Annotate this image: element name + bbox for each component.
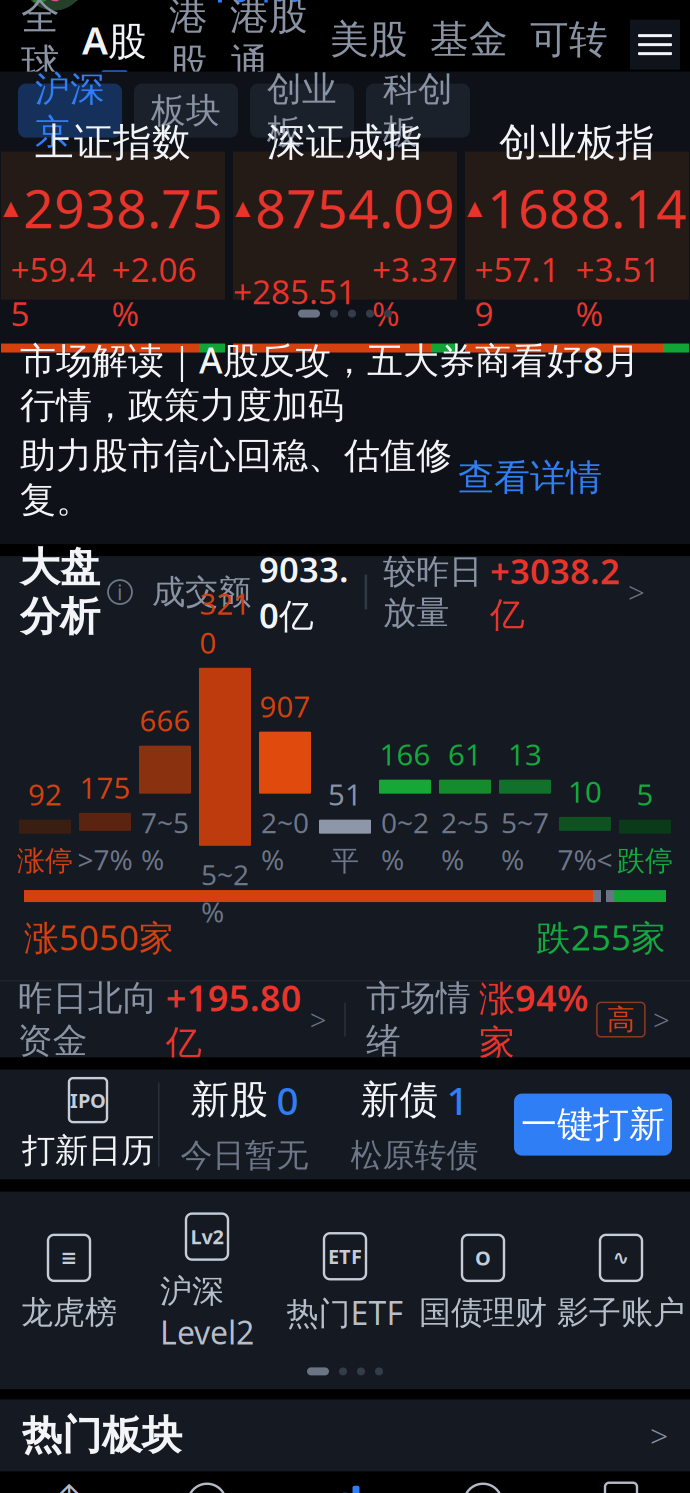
- staticText: O: [475, 1245, 491, 1271]
- staticText: 热门板块: [22, 1411, 182, 1460]
- button[interactable]: ↗: [138, 1479, 276, 1493]
- staticText: 涨5050家: [24, 914, 174, 960]
- button[interactable]: 交易: [414, 1479, 552, 1493]
- staticText: 新股: [190, 1076, 268, 1124]
- staticText: 热门ETF: [286, 1291, 403, 1334]
- button[interactable]: 行情: [276, 1479, 414, 1493]
- button[interactable]: 科创板: [366, 84, 470, 138]
- staticText: 行情: [209, 0, 307, 10]
- staticText: Lv2: [190, 1223, 223, 1250]
- staticText: 5~2%: [201, 856, 249, 930]
- button[interactable]: 沪深京: [18, 84, 122, 138]
- staticText: 5~7%: [501, 804, 549, 878]
- button[interactable]: Profile: [20, 0, 88, 14]
- staticText: +195.80亿: [166, 974, 302, 1066]
- staticText: 666: [139, 701, 190, 740]
- button[interactable]: 深证成指: [233, 152, 457, 300]
- staticText: 10: [568, 772, 602, 811]
- staticText: 创业板: [267, 68, 337, 153]
- staticText: 龙虎榜: [21, 1293, 117, 1332]
- staticText: 查看详情: [458, 456, 602, 500]
- button[interactable]: 美股: [319, 16, 419, 73]
- button[interactable]: ≡: [0, 1235, 138, 1332]
- button[interactable]: 热门板块: [0, 1399, 690, 1471]
- button[interactable]: 市场情绪: [346, 982, 690, 1058]
- staticText: ↑: [49, 1475, 89, 1493]
- staticText: 0: [276, 1074, 298, 1126]
- staticText: IPO: [70, 1087, 106, 1113]
- staticText: 基金: [430, 16, 508, 63]
- staticText: 助力股市信心回稳、估值修复。: [20, 434, 452, 522]
- button[interactable]: 全球: [10, 0, 71, 97]
- button[interactable]: O: [414, 1235, 552, 1332]
- staticText: 全球: [21, 0, 60, 87]
- button[interactable]: Lv2: [138, 1214, 276, 1353]
- button[interactable]: 新股: [159, 1074, 329, 1175]
- staticText: 2~0%: [261, 804, 309, 878]
- button[interactable]: IPO: [18, 1078, 158, 1171]
- staticText: ▲: [3, 196, 18, 219]
- staticText: │: [357, 575, 375, 609]
- button[interactable]: 上证指数: [1, 152, 225, 300]
- staticText: 松原转债: [350, 1136, 478, 1175]
- staticText: +3.37%: [372, 247, 457, 335]
- button[interactable]: 昨日北向资金: [0, 982, 344, 1058]
- staticText: 跌停: [617, 844, 673, 878]
- staticText: 国债理财: [419, 1293, 547, 1332]
- staticText: 8754.09: [255, 172, 455, 243]
- button[interactable]: 港股通: [219, 0, 319, 97]
- staticText: 92: [28, 775, 62, 814]
- staticText: 美股: [330, 16, 408, 63]
- staticText: >7%: [77, 841, 132, 878]
- button[interactable]: 新债: [329, 1074, 499, 1175]
- staticText: 跌255家: [536, 914, 666, 960]
- button[interactable]: 大盘分析: [0, 556, 690, 628]
- staticText: 创业板指: [499, 119, 655, 166]
- staticText: 3210: [199, 584, 250, 662]
- staticText: 涨94%家: [479, 974, 589, 1066]
- staticText: 2~5%: [441, 804, 489, 878]
- staticText: 沪深Level2: [160, 1272, 254, 1353]
- staticText: +57.19: [474, 247, 559, 335]
- button[interactable]: More markets: [630, 20, 680, 70]
- staticText: +3.51%: [575, 247, 660, 335]
- button[interactable]: A股: [71, 14, 158, 75]
- staticText: 成交额: [152, 572, 251, 612]
- staticText: +285.51: [233, 269, 356, 313]
- staticText: 175: [79, 768, 130, 807]
- button[interactable]: ¥: [552, 1479, 690, 1493]
- button[interactable]: 创业板: [250, 84, 354, 138]
- staticText: 高: [607, 1002, 635, 1037]
- staticText: 昨日北向资金: [18, 977, 158, 1062]
- staticText: 2938.75: [23, 172, 223, 243]
- staticText: ETF: [328, 1243, 362, 1270]
- button[interactable]: ETF: [276, 1233, 414, 1334]
- button[interactable]: 板块: [134, 84, 238, 138]
- staticText: 市场解读｜A股反攻，五大券商看好8月行情，政策力度加码: [20, 336, 640, 428]
- button[interactable]: 港股: [158, 0, 219, 97]
- staticText: 61: [448, 735, 482, 774]
- button[interactable]: 市场解读｜A股反攻，五大券商看好8月行情，政策力度加码: [0, 318, 690, 544]
- staticText: 1: [446, 1074, 468, 1126]
- button[interactable]: ∿: [552, 1235, 690, 1332]
- staticText: 科创板: [383, 68, 453, 153]
- staticText: 今日暂无: [180, 1136, 308, 1175]
- staticText: 13: [508, 735, 542, 774]
- staticText: 0~2%: [381, 804, 429, 878]
- staticText: 9033.0亿: [259, 546, 349, 638]
- button[interactable]: 可转: [519, 16, 619, 73]
- staticText: >: [653, 1000, 670, 1039]
- button[interactable]: 一键打新: [514, 1094, 672, 1156]
- staticText: 市场情绪: [366, 977, 471, 1062]
- staticText: 新债: [360, 1076, 438, 1124]
- staticText: ↗: [196, 1488, 217, 1493]
- button[interactable]: 行情: [209, 0, 307, 10]
- staticText: 影子账户: [557, 1293, 685, 1332]
- button[interactable]: ↑: [0, 1479, 138, 1493]
- button[interactable]: 创业板指: [465, 152, 689, 300]
- button[interactable]: 基金: [419, 16, 519, 73]
- staticText: >: [628, 573, 645, 612]
